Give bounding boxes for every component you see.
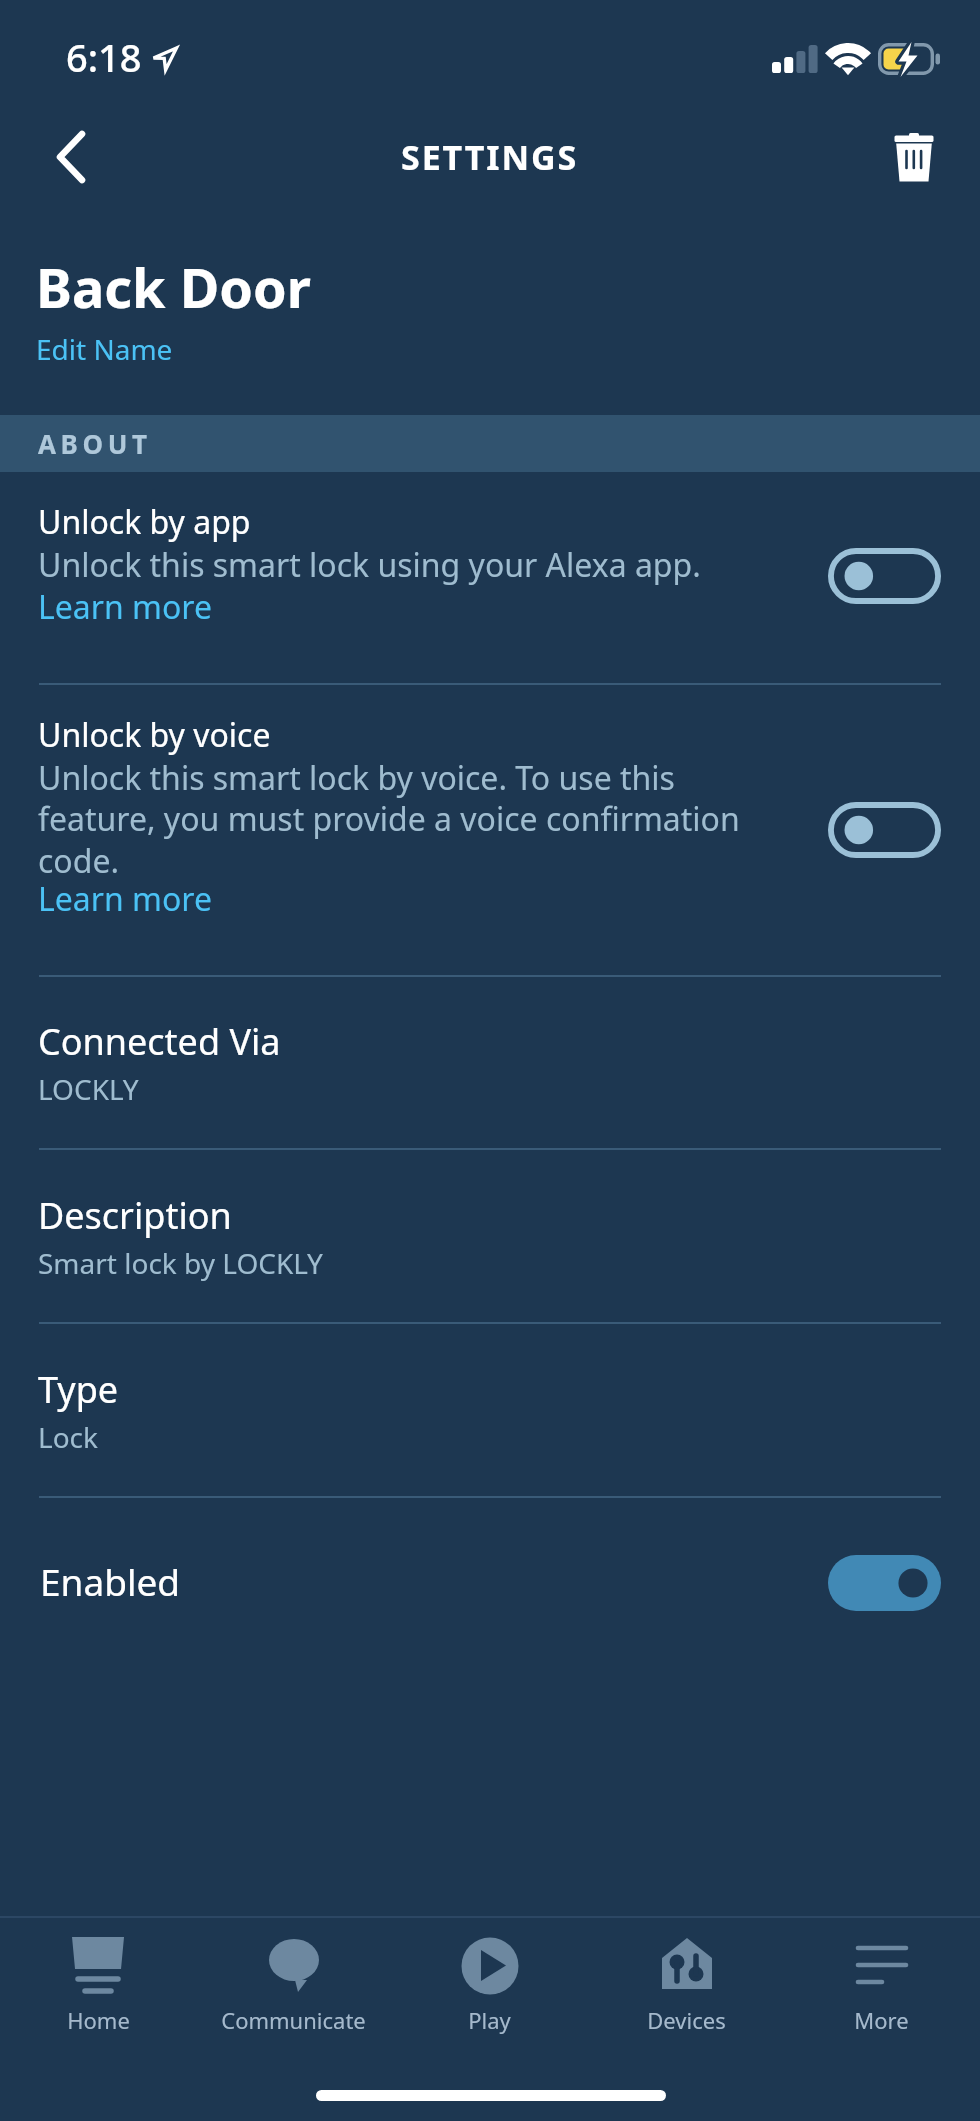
staticText: Unlock by voice bbox=[38, 713, 271, 757]
staticText: Unlock by app bbox=[38, 500, 251, 544]
button[interactable] bbox=[0, 1000, 980, 1110]
button[interactable] bbox=[0, 1174, 980, 1284]
button[interactable] bbox=[783, 1918, 979, 2044]
button[interactable]: Learn more bbox=[38, 585, 212, 629]
staticText: Lock bbox=[38, 1418, 99, 1456]
button[interactable] bbox=[195, 1918, 391, 2044]
button[interactable]: Back bbox=[35, 121, 107, 193]
button[interactable]: Delete bbox=[878, 122, 950, 194]
button[interactable]: Edit Name bbox=[36, 328, 173, 370]
button[interactable] bbox=[588, 1918, 784, 2044]
staticText: Play bbox=[468, 2005, 511, 2035]
button[interactable] bbox=[0, 1918, 196, 2044]
button[interactable]: Toggle, off bbox=[828, 548, 941, 604]
staticText: Back Door bbox=[36, 250, 311, 324]
staticText: SETTINGS bbox=[401, 134, 579, 180]
staticText: Devices bbox=[647, 2005, 726, 2035]
staticText: feature, you must provide a voice confir… bbox=[38, 797, 740, 841]
button[interactable] bbox=[0, 1348, 980, 1458]
staticText: LOCKLY bbox=[38, 1070, 139, 1108]
staticText: Unlock this smart lock using your Alexa … bbox=[38, 543, 701, 587]
staticText: 6:18 bbox=[66, 31, 142, 83]
staticText: Enabled bbox=[40, 1556, 828, 1606]
button[interactable] bbox=[0, 472, 980, 683]
button[interactable]: Toggle, off bbox=[828, 802, 941, 858]
button[interactable] bbox=[0, 683, 980, 975]
staticText: Edit Name bbox=[36, 330, 173, 368]
staticText: More bbox=[854, 2005, 909, 2035]
button[interactable] bbox=[391, 1918, 587, 2044]
staticText: ABOUT bbox=[38, 426, 152, 461]
button[interactable]: Enabled bbox=[0, 1540, 980, 1626]
staticText: code. bbox=[38, 839, 120, 883]
staticText: Unlock this smart lock by voice. To use … bbox=[38, 756, 675, 800]
button[interactable]: Learn more bbox=[38, 877, 212, 921]
button[interactable]: Enabled toggle, on bbox=[828, 1555, 941, 1611]
staticText: Description bbox=[38, 1191, 232, 1240]
staticText: Communicate bbox=[221, 2005, 366, 2035]
staticText: Type bbox=[38, 1365, 119, 1414]
staticText: Connected Via bbox=[38, 1017, 281, 1066]
staticText: Smart lock by LOCKLY bbox=[38, 1244, 323, 1282]
staticText: Home bbox=[67, 2005, 130, 2035]
